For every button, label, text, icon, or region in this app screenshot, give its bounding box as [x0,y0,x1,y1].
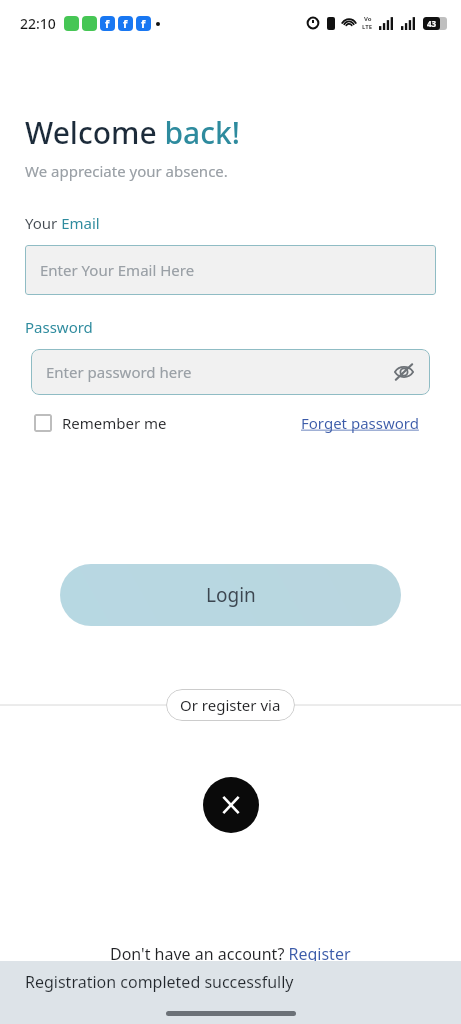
staticText: f [123,16,128,31]
staticText: Password [25,317,93,337]
staticText: Don't have an account? Register [110,943,351,965]
button[interactable]: Register with X [203,777,259,833]
button[interactable]: Don't have an account? Register [110,943,351,965]
staticText: Forget password [301,413,419,433]
staticText: Or register via [180,695,281,715]
staticText: 43 [427,18,437,29]
button[interactable]: Enter Your Email Here [25,245,436,295]
button[interactable]: Enter password here [31,349,430,395]
button[interactable]: Forget password [301,413,419,433]
staticText: 22:10 [20,14,56,33]
staticText: Enter password here [46,362,192,382]
staticText: Your Email [25,213,100,233]
staticText: Welcome back! [25,112,240,153]
button[interactable]: Login [60,564,401,626]
staticText: Login [206,582,256,608]
staticText: LTE [362,23,373,31]
staticText: Enter Your Email Here [40,260,195,280]
staticText: Vo [364,15,372,23]
staticText: f [141,16,146,31]
staticText: Remember me [62,413,167,433]
staticText: We appreciate your absence. [25,161,228,181]
staticText: Registration completed successfully [25,971,294,993]
button[interactable]: Remember me [34,413,167,433]
staticText: f [105,16,110,31]
button[interactable]: Show password [390,358,418,386]
